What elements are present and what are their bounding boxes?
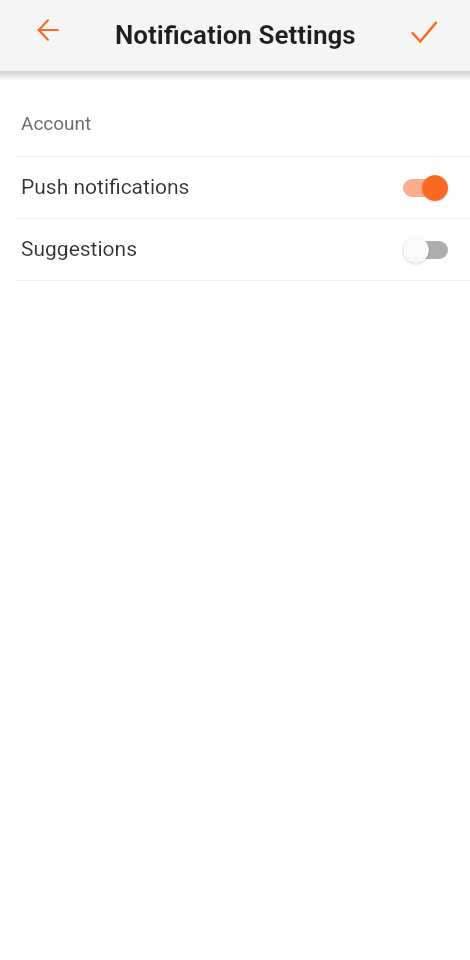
staticText: Suggestions <box>21 237 403 262</box>
button[interactable]: Done <box>400 8 448 56</box>
staticText: Account <box>21 112 92 134</box>
staticText: Notification Settings <box>115 20 356 50</box>
button[interactable]: Back <box>24 6 72 54</box>
button[interactable]: Suggestions <box>0 219 470 280</box>
button[interactable]: Suggestions, off <box>403 237 448 263</box>
staticText: Push notifications <box>21 175 403 200</box>
button[interactable]: Push notifications <box>0 157 470 218</box>
button[interactable]: Push notifications, on <box>403 175 448 201</box>
